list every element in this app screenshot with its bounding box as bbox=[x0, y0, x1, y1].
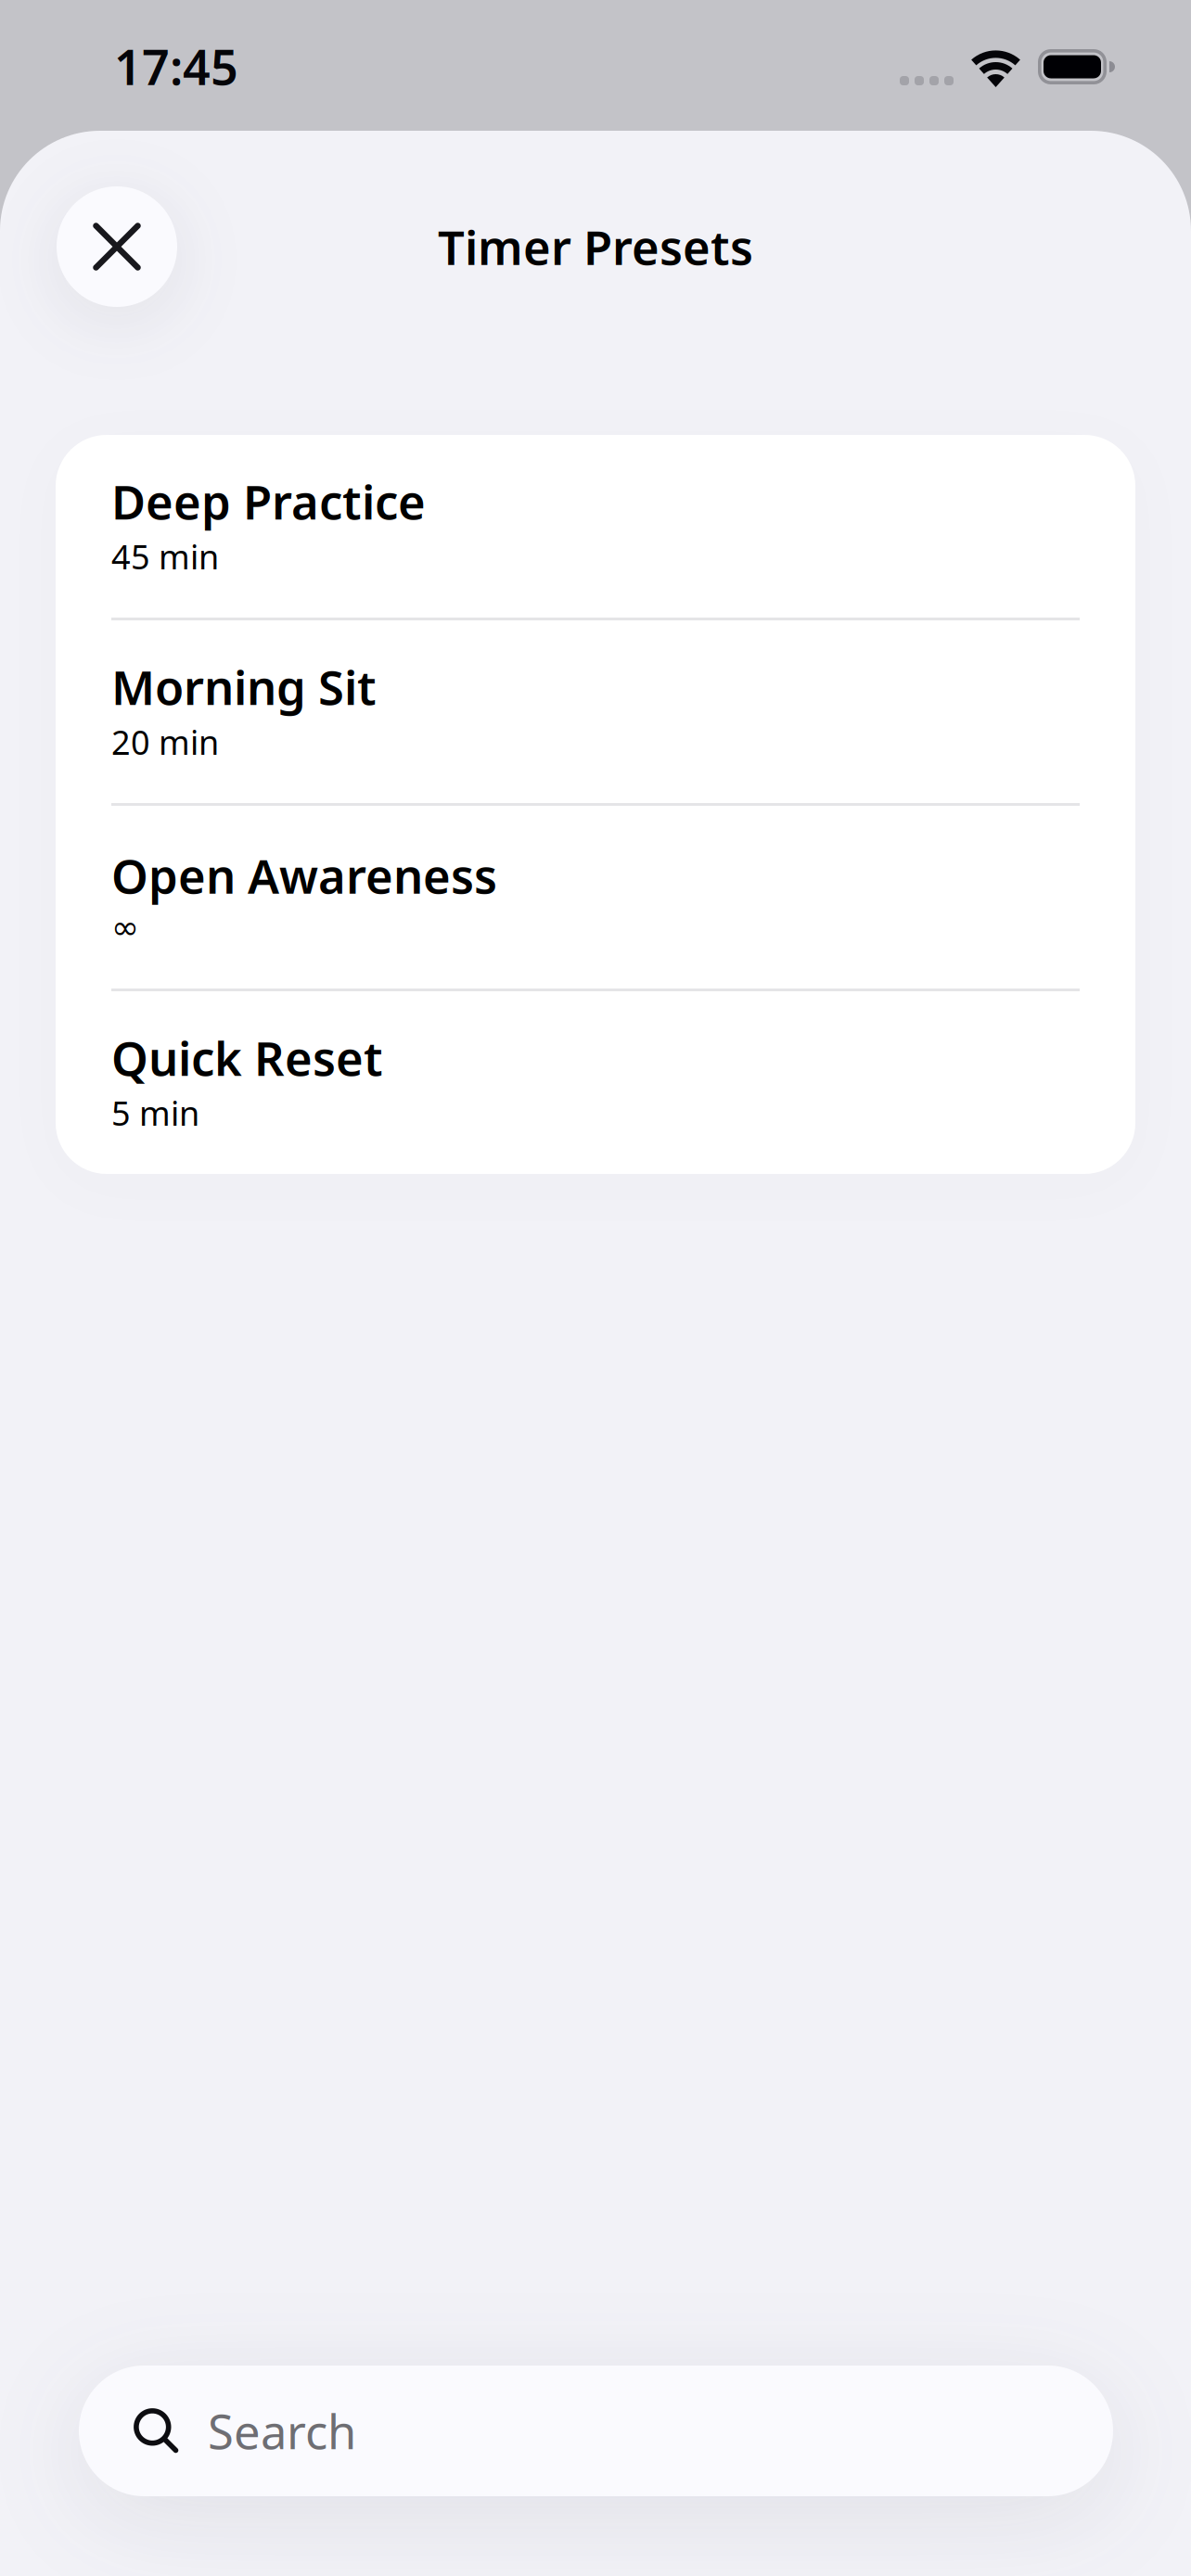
staticText: Morning Sit bbox=[111, 656, 377, 718]
button[interactable]: Close bbox=[57, 186, 177, 307]
staticText: Deep Practice bbox=[111, 470, 426, 533]
staticText: 17:45 bbox=[114, 34, 238, 98]
staticText: 20 min bbox=[111, 720, 219, 764]
staticText: Quick Reset bbox=[111, 1027, 383, 1089]
staticText: Search bbox=[208, 2400, 356, 2462]
staticText: 45 min bbox=[111, 534, 219, 579]
staticText: Timer Presets bbox=[438, 216, 753, 278]
button[interactable]: Morning Sit bbox=[56, 620, 1135, 803]
button[interactable]: Quick Reset bbox=[56, 991, 1135, 1174]
staticText: ∞ bbox=[111, 908, 139, 946]
staticText: Open Awareness bbox=[111, 844, 497, 907]
staticText: 5 min bbox=[111, 1091, 199, 1135]
button[interactable]: Deep Practice bbox=[56, 435, 1135, 618]
button[interactable]: Open Awareness bbox=[56, 806, 1135, 988]
button[interactable]: Search bbox=[79, 2366, 1113, 2496]
